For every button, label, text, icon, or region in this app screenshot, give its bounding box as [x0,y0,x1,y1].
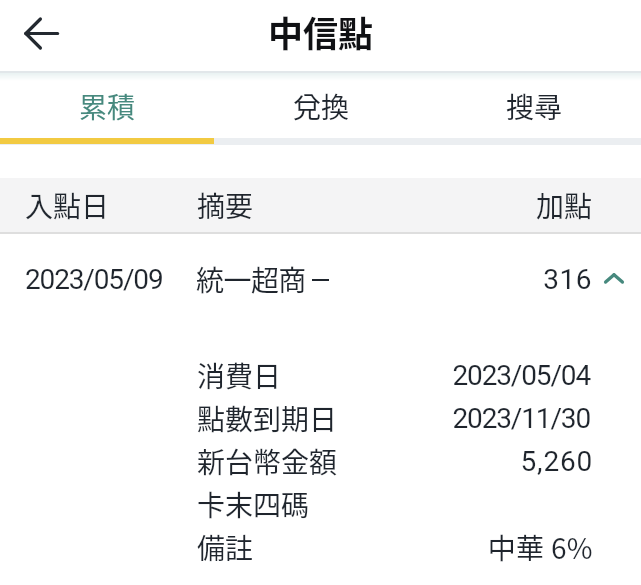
staticText: 5,260 [0,445,593,478]
staticText: 中華 6% [0,527,593,568]
staticText: 2023/05/04 [0,359,590,392]
staticText: 統一超商 [196,259,306,300]
staticText: 累積 [0,86,214,127]
button[interactable]: 搜尋 [427,73,641,137]
staticText: 備註 [197,527,254,568]
staticText: 新台幣金額 [197,441,338,482]
staticText: 消費日 [197,355,282,396]
staticText: 卡末四碼 [197,484,310,525]
button[interactable] [0,234,641,330]
staticText: 中信點 [0,6,641,57]
staticText: 搜尋 [427,86,641,127]
staticText: 摘要 [197,185,254,226]
staticText: 2023/05/09 [25,263,163,296]
button[interactable]: Back [4,5,60,61]
staticText: 點數到期日 [197,398,338,439]
button[interactable]: Collapse details [595,260,633,298]
button[interactable]: 累積 [0,73,214,137]
staticText: 2023/11/30 [0,402,590,435]
button[interactable]: 兌換 [214,73,428,137]
staticText: 加點 [0,185,592,226]
staticText: 兌換 [214,86,428,127]
staticText: 入點日 [25,185,110,226]
staticText: 316 [0,263,592,296]
